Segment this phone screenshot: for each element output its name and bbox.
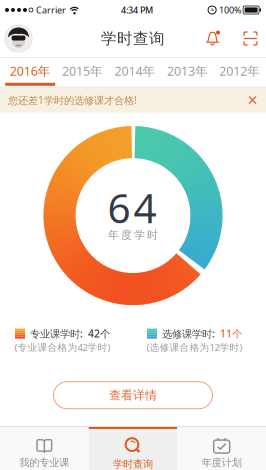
button[interactable]: 2012年 xyxy=(214,58,266,87)
staticText: 我的专业课 xyxy=(19,456,69,469)
staticText: 64 xyxy=(107,180,156,235)
button[interactable]: 2013年 xyxy=(161,58,214,87)
staticText: 100% xyxy=(219,4,241,16)
staticText: 查看详情 xyxy=(109,388,157,403)
staticText: 学时查询 xyxy=(101,29,165,48)
button[interactable]: 2014年 xyxy=(109,58,161,87)
staticText: 学时查询 xyxy=(113,458,153,470)
button[interactable] xyxy=(0,25,32,52)
staticText: 2016年 xyxy=(10,62,51,79)
staticText: 专业课学时: xyxy=(30,327,83,341)
staticText: 4:34 PM xyxy=(121,4,153,16)
staticText: 2015年 xyxy=(62,62,103,79)
button[interactable]: 2015年 xyxy=(56,58,109,87)
button[interactable] xyxy=(249,97,266,104)
staticText: 您还差1学时的选修课才合格! xyxy=(8,93,137,107)
button[interactable] xyxy=(205,31,244,46)
staticText: 11个 xyxy=(220,327,242,341)
button[interactable]: 查看详情 xyxy=(53,382,212,409)
button[interactable]: 2016年 xyxy=(4,58,56,87)
button[interactable]: 我的专业课 xyxy=(0,427,89,470)
staticText: 年度学时 xyxy=(108,228,158,242)
staticText: 2013年 xyxy=(167,62,208,79)
button[interactable] xyxy=(244,32,266,45)
button[interactable]: 学时查询 xyxy=(89,427,177,470)
staticText: Carrier xyxy=(36,4,66,16)
button[interactable]: 年度计划 xyxy=(177,427,266,470)
staticText: 年度计划 xyxy=(202,456,242,469)
staticText: (选修课合格为12学时) xyxy=(146,341,242,354)
staticText: 2012年 xyxy=(219,62,260,79)
staticText: (专业课合格为42学时) xyxy=(14,341,110,354)
staticText: 2014年 xyxy=(114,62,155,79)
staticText: 42个 xyxy=(88,327,110,341)
staticText: 选修课学时: xyxy=(162,327,215,341)
